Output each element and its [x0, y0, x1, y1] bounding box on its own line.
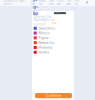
staticText: Monzo — [38, 31, 49, 35]
staticText: Your teams and their shared asset librar… — [34, 17, 56, 21]
staticText: Salesforce — [38, 26, 55, 30]
staticText: Assets — [49, 0, 54, 6]
staticText: Pinterest — [38, 45, 52, 50]
staticText: Get started — [55, 10, 64, 16]
staticText: Continue — [46, 93, 61, 98]
button[interactable]: Continue — [35, 93, 72, 98]
button[interactable]: Monzo — [34, 31, 72, 35]
staticText: folio — [33, 0, 38, 29]
button[interactable]: Netflix — [34, 51, 72, 54]
staticText: Library — [57, 0, 64, 6]
button[interactable]: Get started — [54, 12, 66, 14]
button[interactable]: Salesforce — [34, 27, 72, 30]
staticText: Airbnb Inc. — [38, 41, 55, 45]
button[interactable]: Airbnb Inc. — [34, 41, 72, 44]
staticText: Help — [75, 0, 80, 6]
staticText: Brands — [39, 0, 46, 6]
staticText: brandfolio.app/select — [4, 0, 26, 6]
staticText: Home — [31, 0, 36, 6]
staticText: Figma — [38, 36, 48, 40]
staticText: Netflix — [38, 50, 49, 54]
staticText: Team — [67, 0, 72, 6]
button[interactable]: Figma — [34, 36, 72, 39]
staticText: New — [52, 18, 56, 25]
button[interactable]: Account — [86, 1, 88, 3]
staticText: Recently opened — [34, 18, 48, 26]
staticText: Choose the brand you want to work with — [34, 15, 56, 18]
button[interactable]: Pinterest — [34, 46, 72, 49]
